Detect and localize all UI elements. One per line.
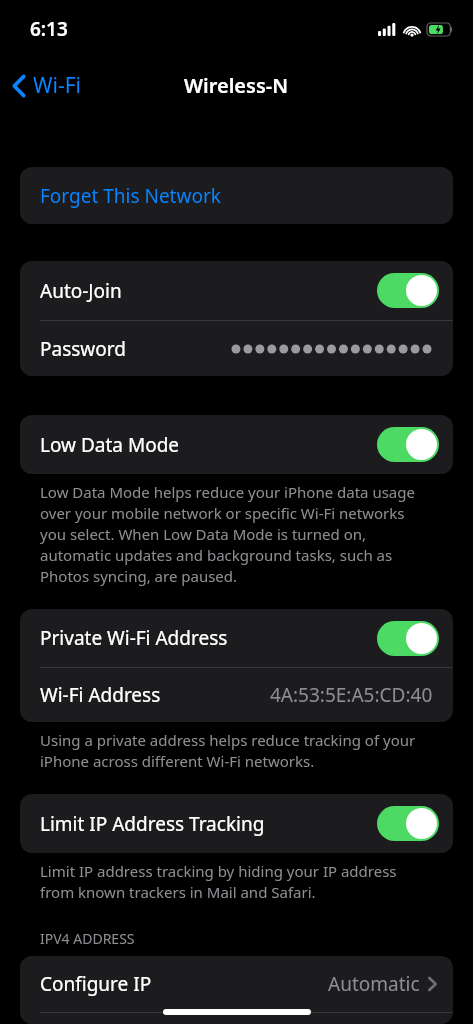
staticText: Low Data Mode helps reduce your iPhone d… <box>40 482 429 587</box>
button[interactable]: Toggle <box>377 273 439 308</box>
staticText: Password <box>40 336 126 362</box>
button[interactable]: Toggle <box>377 621 439 656</box>
button[interactable]: Forget This Network <box>20 167 453 224</box>
button[interactable]: Wi-Fi Address <box>20 668 453 722</box>
button[interactable]: Toggle <box>377 806 439 841</box>
staticText: Limit IP Address Tracking <box>40 811 265 837</box>
button[interactable]: Low Data Mode <box>20 415 453 474</box>
staticText: 6:13 <box>30 16 68 42</box>
button[interactable]: Configure IP <box>20 956 453 1012</box>
button[interactable]: Password <box>20 321 453 376</box>
staticText: Using a private address helps reduce tra… <box>40 730 429 772</box>
staticText: Auto-Join <box>40 278 122 304</box>
staticText: Automatic <box>328 971 420 997</box>
staticText: Private Wi-Fi Address <box>40 625 228 651</box>
staticText: Wi-Fi <box>33 71 82 100</box>
button[interactable]: Limit IP Address Tracking <box>20 794 453 853</box>
staticText: Wireless-N <box>184 72 289 99</box>
button[interactable]: Wi-Fi <box>0 65 92 106</box>
staticText: Forget This Network <box>40 183 221 209</box>
staticText: Limit IP address tracking by hiding your… <box>40 861 429 903</box>
button[interactable]: Toggle <box>377 427 439 462</box>
button[interactable]: Private Wi-Fi Address <box>20 609 453 667</box>
button[interactable]: Auto-Join <box>20 261 453 320</box>
staticText: Low Data Mode <box>40 432 180 458</box>
staticText: Wi-Fi Address <box>40 682 161 708</box>
staticText: 4A:53:5E:A5:CD:40 <box>270 682 433 708</box>
staticText: IPV4 ADDRESS <box>40 929 135 948</box>
staticText: Configure IP <box>40 971 152 997</box>
